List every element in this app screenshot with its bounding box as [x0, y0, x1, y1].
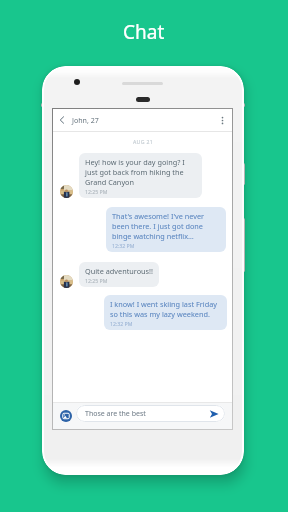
staticText: AUG 21: [133, 138, 153, 145]
staticText: John, 27: [72, 115, 99, 125]
staticText: 12:25 PM: [85, 277, 108, 284]
staticText: Chat: [123, 19, 165, 45]
staticText: Hey! how is your day going? I: [85, 157, 185, 167]
button[interactable]: Back: [54, 112, 70, 128]
staticText: That's awesome! I've never: [112, 211, 205, 221]
button[interactable]: I know! I went skiing last Friday: [104, 295, 227, 330]
staticText: I know! I went skiing last Friday: [110, 299, 217, 309]
staticText: so this was my lazy weekend.: [110, 309, 210, 319]
button[interactable]: Send: [208, 408, 220, 420]
button[interactable]: More options: [214, 112, 230, 128]
staticText: 12:25 PM: [85, 188, 108, 195]
button[interactable]: Hey! how is your day going? I: [79, 153, 202, 198]
button[interactable]: That's awesome! I've never: [106, 207, 226, 252]
staticText: binge watching netflix…: [112, 231, 194, 241]
button[interactable]: Add sticker: [60, 410, 72, 422]
staticText: 12:32 PM: [110, 320, 133, 327]
staticText: been there. I just got done: [112, 221, 203, 231]
button[interactable]: Contact photo: [60, 185, 73, 198]
button[interactable]: Contact photo: [60, 275, 73, 288]
staticText: 12:32 PM: [112, 242, 135, 249]
staticText: Those are the best: [85, 409, 146, 419]
staticText: Quite adventurous!!: [85, 266, 154, 276]
button[interactable]: Quite adventurous!!: [79, 262, 159, 287]
staticText: just got back from hiking the: [85, 167, 184, 177]
button[interactable]: Those are the best: [76, 405, 225, 422]
staticText: Grand Canyon: [85, 177, 135, 187]
